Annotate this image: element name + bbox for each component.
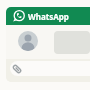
button[interactable]: Contact avatar — [18, 31, 38, 51]
staticText: WhatsApp — [28, 11, 69, 22]
button[interactable]: Attach — [12, 64, 22, 74]
button[interactable]: Message — [10, 61, 90, 76]
button[interactable]: WhatsApp — [6, 7, 90, 25]
